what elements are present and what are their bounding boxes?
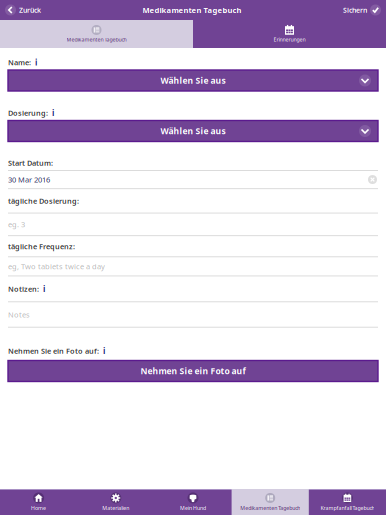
staticText: Nehmen Sie ein Foto auf — [140, 365, 245, 377]
button[interactable]: Löschen — [367, 174, 378, 185]
staticText: i — [35, 57, 37, 68]
staticText: eg, Two tablets twice a day — [8, 261, 105, 271]
staticText: Name: — [8, 57, 31, 67]
staticText: tägliche Dosierung: — [8, 196, 79, 206]
staticText: Sichern — [343, 5, 367, 15]
staticText: Home — [31, 504, 46, 512]
staticText: Krampfanfall Tagebuch — [320, 504, 374, 512]
staticText: Wählen Sie aus — [160, 125, 225, 137]
staticText: i — [43, 283, 45, 294]
button[interactable]: Materialien — [77, 489, 154, 515]
staticText: Medikamenten Tagebuch — [66, 36, 126, 43]
staticText: Erinnerungen — [273, 36, 305, 43]
staticText: Medikamenten Tagebuch — [240, 504, 300, 512]
staticText: Notizen: — [8, 284, 39, 294]
staticText: i — [103, 346, 105, 356]
button[interactable]: Sichern — [343, 0, 386, 20]
staticText: 30 Mar 2016 — [8, 174, 50, 185]
button[interactable]: Zurück — [0, 0, 41, 20]
button[interactable]: Krampfanfall Tagebuch — [309, 489, 386, 515]
staticText: Notes — [8, 309, 30, 320]
staticText: Wählen Sie aus — [160, 75, 225, 86]
button[interactable]: Home — [0, 489, 77, 515]
staticText: Mein Hund — [180, 504, 206, 512]
staticText: Dosierung: — [8, 108, 48, 118]
button[interactable]: Wählen Sie aus — [8, 120, 378, 141]
staticText: Zurück — [19, 5, 41, 15]
staticText: Materialien — [102, 504, 129, 512]
staticText: tägliche Frequenz: — [8, 241, 75, 251]
button[interactable]: Wählen Sie aus — [8, 70, 378, 91]
staticText: i — [52, 108, 54, 118]
staticText: eg. 3 — [8, 219, 25, 229]
staticText: Medikamenten Tagebuch — [142, 5, 241, 15]
button[interactable]: Mein Hund — [154, 489, 232, 515]
button[interactable]: Erinnerungen — [193, 20, 386, 48]
button[interactable]: Medikamenten Tagebuch — [0, 20, 193, 48]
staticText: Nehmen Sie ein Foto auf: — [8, 346, 99, 356]
staticText: Start Datum: — [8, 158, 53, 168]
button[interactable]: Nehmen Sie ein Foto auf — [8, 360, 378, 381]
button[interactable]: Medikamenten Tagebuch — [232, 489, 309, 515]
